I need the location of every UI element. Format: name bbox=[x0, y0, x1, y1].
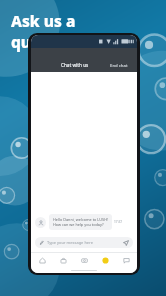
button[interactable]: End chat bbox=[106, 58, 132, 72]
button[interactable]: Type your message here bbox=[35, 237, 133, 248]
staticText: question bbox=[11, 31, 81, 52]
button[interactable]: Chat bbox=[95, 253, 116, 268]
button[interactable]: Hello Danni, welcome to LUSH! bbox=[49, 214, 112, 230]
button[interactable]: Home bbox=[31, 253, 53, 268]
staticText: Chat with us bbox=[61, 62, 89, 68]
button[interactable]: Chat with us bbox=[57, 58, 93, 72]
staticText: Hello Danni, welcome to LUSH! bbox=[53, 217, 108, 222]
staticText: 17:37 bbox=[114, 220, 123, 224]
button[interactable]: Scan card bbox=[74, 253, 95, 268]
staticText: End chat bbox=[110, 62, 128, 68]
staticText: Ask us a bbox=[11, 10, 76, 31]
staticText: Type your message here bbox=[47, 240, 93, 245]
button[interactable]: Shop bbox=[53, 253, 74, 268]
button[interactable]: Send message bbox=[123, 240, 129, 246]
staticText: How can we help you today? bbox=[53, 222, 104, 227]
button[interactable]: Messages bbox=[116, 253, 137, 268]
